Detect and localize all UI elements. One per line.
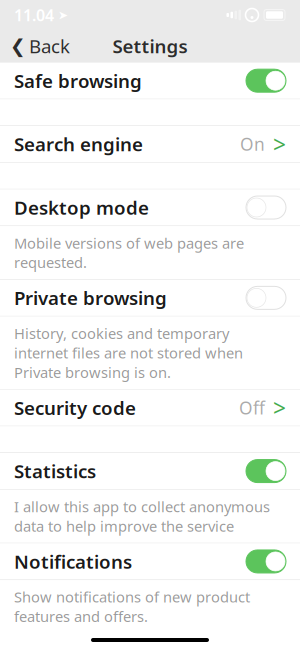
staticText: Private browsing bbox=[14, 285, 167, 310]
staticText: History, cookies and temporary internet … bbox=[14, 324, 243, 382]
button[interactable]: ❮ bbox=[0, 30, 80, 62]
button[interactable]: Desktop mode bbox=[0, 189, 300, 225]
button[interactable]: Private browsing bbox=[0, 280, 300, 316]
staticText: I allow this app to collect anonymous da… bbox=[14, 497, 270, 536]
staticText: On bbox=[240, 133, 265, 156]
staticText: Notifications bbox=[14, 549, 132, 574]
staticText: Settings bbox=[112, 34, 187, 58]
staticText: Statistics bbox=[14, 459, 96, 483]
staticText: Desktop mode bbox=[14, 195, 149, 220]
button[interactable]: Safe browsing bbox=[0, 63, 300, 99]
staticText: Mobile versions of web pages are request… bbox=[14, 233, 244, 272]
button[interactable]: Statistics bbox=[0, 453, 300, 489]
staticText: Clear browser data bbox=[14, 639, 187, 649]
staticText: ❮ bbox=[10, 35, 26, 57]
staticText: Search engine bbox=[14, 132, 143, 156]
button[interactable]: Clear browser data bbox=[0, 634, 300, 649]
button[interactable]: Search engine bbox=[0, 126, 300, 162]
staticText: Security code bbox=[14, 395, 136, 420]
staticText: Back bbox=[29, 34, 70, 58]
button[interactable]: Notifications bbox=[0, 543, 300, 579]
staticText: Show notifications of new product featur… bbox=[14, 587, 250, 626]
staticText: 11.04 bbox=[14, 4, 54, 26]
staticText: > bbox=[273, 393, 286, 423]
button[interactable]: Security code bbox=[0, 390, 300, 426]
staticText: Safe browsing bbox=[14, 68, 142, 93]
staticText: Off bbox=[239, 396, 265, 419]
staticText: ➤ bbox=[58, 8, 68, 22]
staticText: > bbox=[273, 129, 286, 159]
